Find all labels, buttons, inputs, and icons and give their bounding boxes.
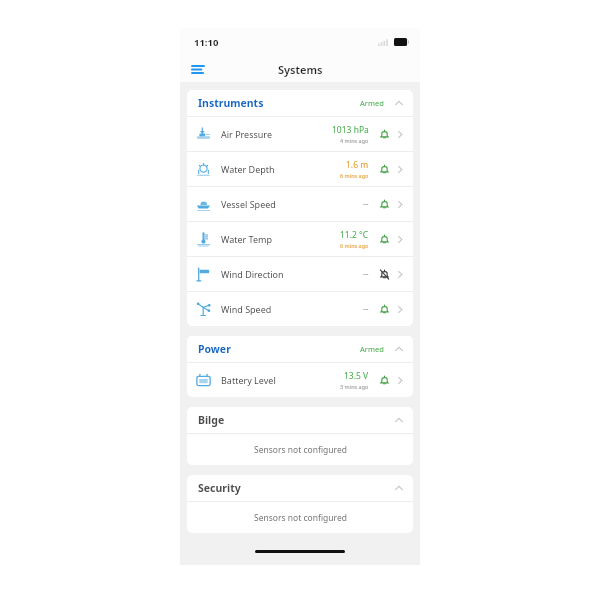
- staticText: --: [363, 198, 369, 210]
- staticText: Bilge: [198, 413, 225, 427]
- staticText: 13.5 V: [344, 370, 369, 382]
- staticText: Power: [198, 342, 231, 356]
- button[interactable]: Battery Level: [187, 363, 413, 397]
- staticText: Wind Direction: [221, 268, 284, 280]
- button[interactable]: Alerts off: [377, 267, 391, 281]
- button[interactable]: Alerts on: [377, 232, 391, 246]
- button[interactable]: Air Pressure: [187, 117, 413, 151]
- staticText: --: [363, 268, 369, 280]
- staticText: Armed: [360, 98, 384, 108]
- staticText: Water Temp: [221, 233, 273, 245]
- staticText: Wind Speed: [221, 303, 272, 315]
- button[interactable]: Alerts on: [377, 162, 391, 176]
- staticText: 11:10: [194, 36, 219, 49]
- staticText: 1013 hPa: [332, 124, 369, 136]
- staticText: 1.6 m: [346, 159, 369, 171]
- button[interactable]: Alerts on: [377, 127, 391, 141]
- button[interactable]: Alerts on: [377, 302, 391, 316]
- button[interactable]: Bilge: [187, 407, 413, 433]
- button[interactable]: Alerts on: [377, 373, 391, 387]
- button[interactable]: Water Depth: [187, 152, 413, 186]
- staticText: Armed: [360, 344, 384, 354]
- staticText: 6 mins ago: [340, 172, 369, 179]
- button[interactable]: Power: [187, 336, 413, 362]
- button[interactable]: Alerts on: [377, 197, 391, 211]
- staticText: Sensors not configured: [254, 512, 347, 524]
- button[interactable]: Security: [187, 475, 413, 501]
- staticText: Sensors not configured: [254, 444, 347, 456]
- staticText: Instruments: [198, 96, 264, 110]
- staticText: Vessel Speed: [221, 198, 276, 210]
- button[interactable]: Wind Speed: [187, 292, 413, 326]
- staticText: --: [363, 303, 369, 315]
- staticText: Battery Level: [221, 374, 276, 386]
- staticText: 4 mins ago: [340, 137, 369, 144]
- button[interactable]: Wind Direction: [187, 257, 413, 291]
- staticText: 3 mins ago: [340, 383, 369, 390]
- button[interactable]: Water Temp: [187, 222, 413, 256]
- button[interactable]: Open navigation menu: [188, 59, 208, 79]
- staticText: Air Pressure: [221, 128, 272, 140]
- staticText: Security: [198, 481, 241, 495]
- button[interactable]: Vessel Speed: [187, 187, 413, 221]
- staticText: Water Depth: [221, 163, 275, 175]
- staticText: 6 mins ago: [340, 242, 369, 249]
- button[interactable]: Instruments: [187, 90, 413, 116]
- staticText: Systems: [278, 62, 323, 77]
- staticText: 11.2 °C: [340, 229, 369, 241]
